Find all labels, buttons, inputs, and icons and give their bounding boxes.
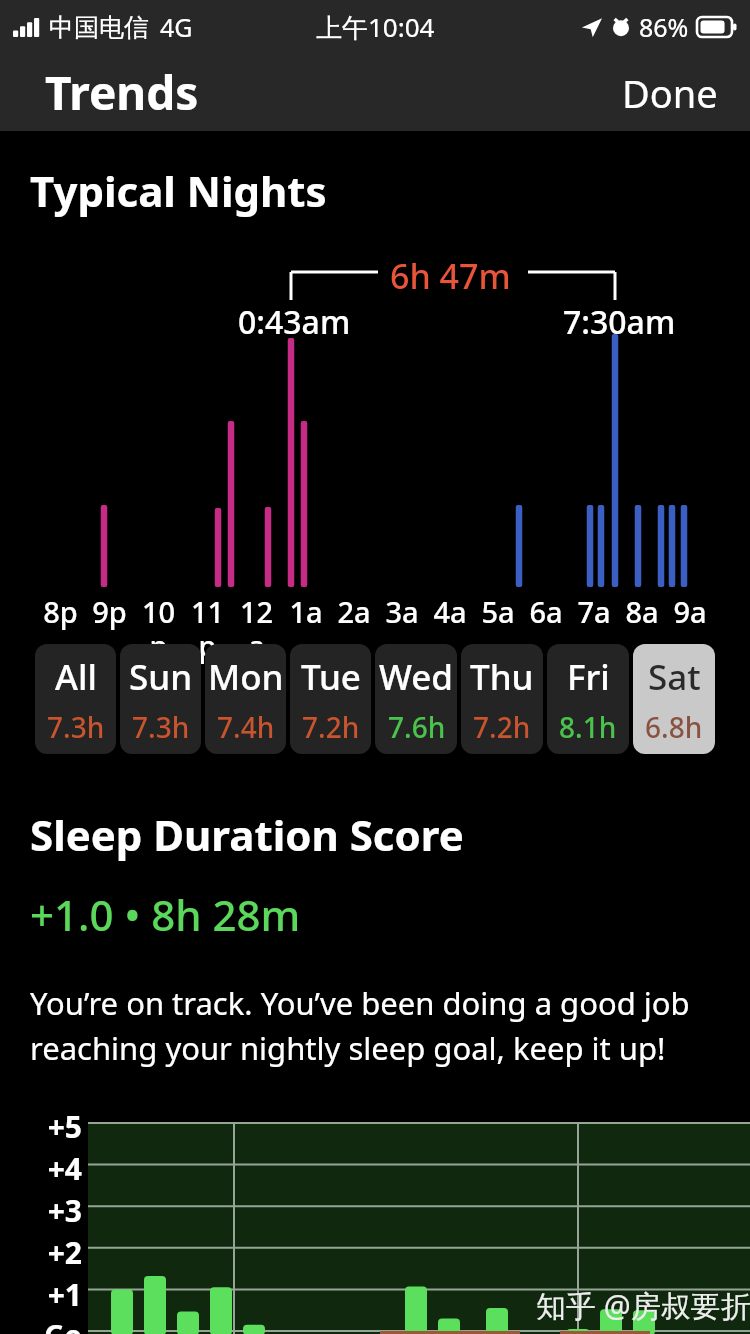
staticText: 0:43am	[238, 300, 351, 344]
staticText: Sleep Duration Score	[30, 806, 464, 863]
staticText: 9a	[673, 592, 707, 631]
staticText: 7.2h	[473, 708, 531, 746]
button[interactable]: Sun	[120, 644, 201, 754]
button[interactable]: Tue	[290, 644, 371, 754]
staticText: Mon	[208, 653, 284, 701]
staticText: Goal	[30, 1316, 82, 1334]
staticText: 7.6h	[388, 708, 446, 746]
staticText: +2	[47, 1232, 82, 1273]
staticText: Tue	[301, 653, 361, 701]
staticText: 7.3h	[47, 708, 105, 746]
button[interactable]: All	[35, 644, 116, 754]
staticText: 4a	[433, 592, 467, 631]
staticText: Wed	[379, 653, 454, 701]
staticText: Thu	[470, 653, 534, 701]
staticText: 7.4h	[217, 708, 275, 746]
staticText: 86%	[639, 10, 689, 44]
staticText: 6h 47m	[390, 253, 511, 299]
staticText: 上午10:04	[316, 9, 435, 45]
staticText: 7:30am	[563, 300, 676, 344]
staticText: Done	[622, 67, 718, 119]
staticText: 7.3h	[132, 708, 190, 746]
staticText: 11p	[183, 592, 232, 665]
button[interactable]: Mon	[205, 644, 286, 754]
staticText: 6.8h	[645, 708, 703, 746]
staticText: 12a	[232, 592, 281, 665]
button[interactable]: Wed	[375, 644, 457, 754]
staticText: +4	[47, 1148, 82, 1189]
staticText: Sun	[129, 653, 193, 701]
staticText: +3	[47, 1190, 82, 1231]
button[interactable]: Done	[590, 55, 750, 131]
staticText: You’re on track. You’ve been doing a goo…	[30, 982, 722, 1069]
button[interactable]: Fri	[547, 644, 629, 754]
staticText: 9p	[92, 592, 127, 631]
staticText: 8.1h	[559, 708, 617, 746]
staticText: +5	[47, 1106, 82, 1147]
staticText: Sat	[648, 653, 701, 701]
staticText: 6a	[529, 592, 563, 631]
staticText: 7a	[577, 592, 611, 631]
staticText: All	[55, 653, 97, 701]
button[interactable]: Sat	[633, 644, 715, 754]
staticText: 1a	[289, 592, 323, 631]
staticText: 7.2h	[302, 708, 360, 746]
staticText: Typical Nights	[30, 162, 327, 219]
staticText: 4G	[160, 10, 193, 44]
staticText: 10p	[134, 592, 183, 665]
staticText: 2a	[337, 592, 371, 631]
staticText: 5a	[481, 592, 515, 631]
staticText: +1.0 • 8h 28m	[30, 886, 301, 943]
button[interactable]: Thu	[461, 644, 543, 754]
staticText: +1	[47, 1274, 82, 1315]
staticText: Trends	[45, 61, 199, 124]
staticText: 3a	[385, 592, 419, 631]
staticText: 中国电信	[49, 12, 149, 43]
staticText: Fri	[567, 653, 610, 701]
staticText: 知乎 @房叔要折腾	[536, 1285, 750, 1326]
staticText: 8a	[625, 592, 659, 631]
staticText: 8p	[43, 592, 78, 631]
